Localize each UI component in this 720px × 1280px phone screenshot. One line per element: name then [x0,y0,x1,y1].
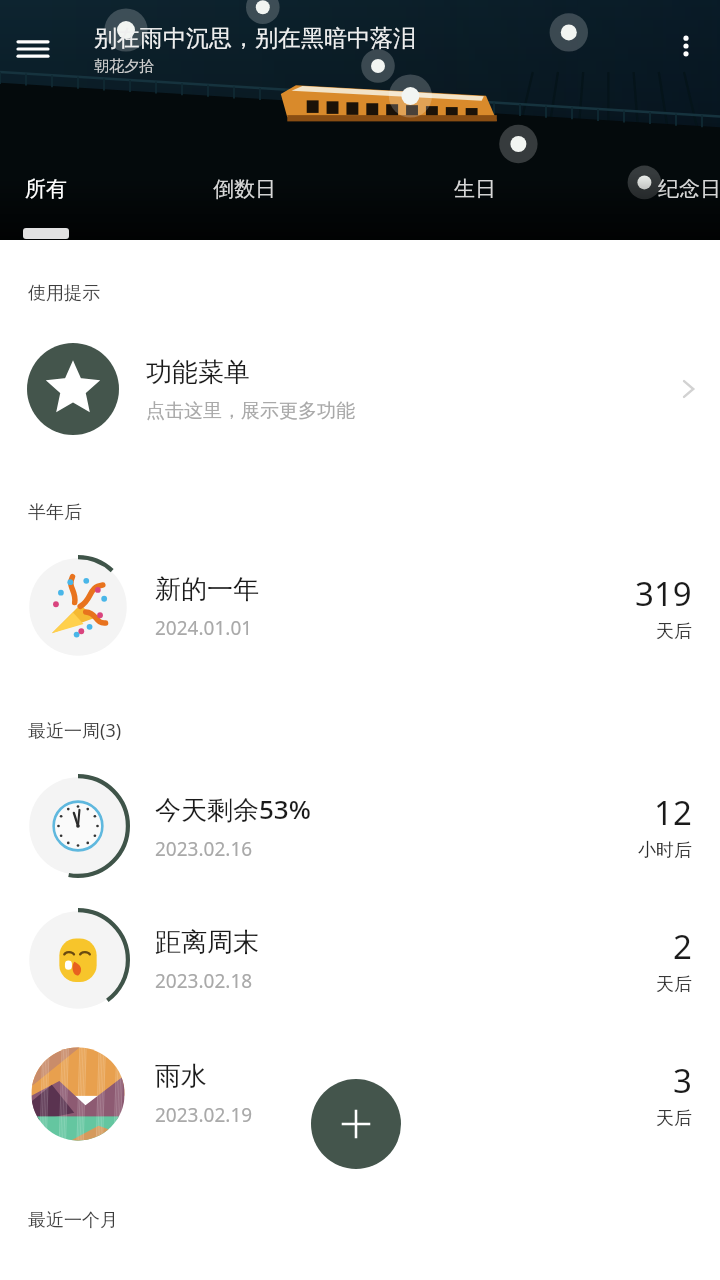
staticText: 倒数日 [213,176,276,202]
staticText: 2 [673,924,692,969]
staticText: 最近一周(3) [28,718,122,743]
staticText: 小时后 [638,839,692,862]
staticText: 12 [654,790,692,835]
staticText: 纪念日 [658,176,720,202]
button[interactable]: 生日 [424,163,526,240]
staticText: 雨水 [155,1060,207,1093]
staticText: 3 [673,1058,692,1103]
staticText: 最近一个月 [28,1209,118,1232]
button[interactable]: 新的一年 [0,540,720,674]
button[interactable]: Add countdown [311,1079,401,1169]
staticText: 距离周末 [155,926,259,959]
staticText: 使用提示 [28,282,100,305]
staticText: 天后 [656,620,692,643]
staticText: 2023.02.18 [155,968,253,994]
staticText: 别在雨中沉思，别在黑暗中落泪 [94,24,416,53]
button[interactable]: 雨水 [0,1027,720,1161]
staticText: 2024.01.01 [155,615,253,641]
staticText: 半年后 [28,501,82,524]
staticText: 2023.02.19 [155,1102,253,1128]
button[interactable]: 所有 [0,163,92,240]
button[interactable]: 今天剩余53% [0,759,720,893]
staticText: 天后 [656,973,692,996]
button[interactable]: 倒数日 [184,163,304,240]
button[interactable]: More options [660,20,712,72]
staticText: 朝花夕拾 [94,57,154,76]
staticText: 功能菜单 [146,356,250,389]
button[interactable]: 距离周末 [0,893,720,1027]
staticText: 今天剩余53% [155,791,311,827]
staticText: 319 [635,571,692,616]
staticText: 天后 [656,1107,692,1130]
button[interactable]: 功能菜单 [0,331,720,447]
staticText: 新的一年 [155,573,259,606]
staticText: 所有 [25,176,67,202]
staticText: 2023.02.16 [155,836,253,862]
staticText: 生日 [454,176,496,202]
button[interactable]: 纪念日 [628,163,720,240]
button[interactable]: Menu [6,22,60,76]
staticText: 点击这里，展示更多功能 [146,399,355,423]
